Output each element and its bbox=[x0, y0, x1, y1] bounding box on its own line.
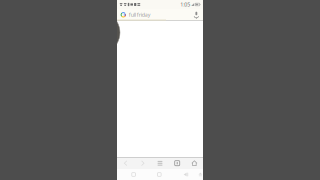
button[interactable]: Menu bbox=[151, 157, 169, 169]
staticText: 1:05 bbox=[180, 1, 190, 8]
button[interactable]: Home bbox=[153, 169, 166, 180]
button[interactable]: Forward bbox=[134, 157, 151, 169]
button[interactable]: Recent apps bbox=[127, 169, 140, 180]
button[interactable]: Hide keyboard bbox=[196, 169, 204, 180]
button[interactable]: Open tabs bbox=[169, 157, 186, 169]
button[interactable]: Home bbox=[186, 157, 203, 169]
button[interactable]: full friday bbox=[117, 10, 203, 20]
button[interactable]: Back bbox=[179, 169, 192, 180]
staticText: full friday bbox=[129, 11, 151, 18]
button[interactable]: Back bbox=[117, 157, 134, 169]
